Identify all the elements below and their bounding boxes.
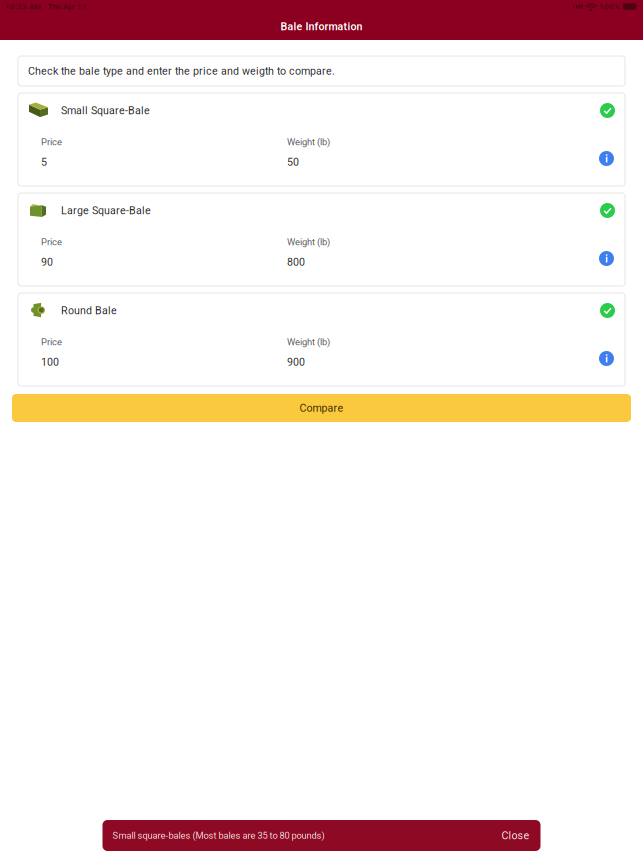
staticText: Price — [41, 336, 62, 347]
button[interactable]: Round Bale selected — [600, 303, 615, 318]
button[interactable]: About Small Square-Bale — [599, 151, 614, 166]
staticText: 900 — [287, 356, 305, 368]
staticText: Close — [501, 829, 529, 842]
staticText: Compare — [299, 402, 343, 414]
staticText: Weight (lb) — [287, 336, 330, 347]
staticText: 10:23 AM — [5, 2, 41, 11]
staticText: Price — [41, 136, 62, 147]
staticText: 800 — [287, 256, 305, 268]
staticText: Price — [41, 236, 62, 247]
button[interactable]: Large Square-Bale selected — [600, 203, 615, 218]
button[interactable]: Compare — [12, 394, 631, 422]
staticText: Thu Apr 11 — [48, 2, 87, 11]
staticText: Weight (lb) — [287, 136, 330, 147]
staticText: 5 — [41, 156, 47, 168]
staticText: Small Square-Bale — [61, 104, 150, 117]
staticText: Bale Information — [280, 20, 362, 33]
button[interactable]: Close — [491, 829, 529, 842]
staticText: Round Bale — [61, 304, 117, 317]
staticText: 100% — [599, 2, 620, 11]
button[interactable]: About Round Bale — [599, 351, 614, 366]
button[interactable]: About Large Square-Bale — [599, 251, 614, 266]
staticText: Small square-bales (Most bales are 35 to… — [112, 830, 324, 841]
staticText: 50 — [287, 156, 299, 168]
staticText: Check the bale type and enter the price … — [28, 65, 335, 77]
button[interactable]: Small Square-Bale selected — [600, 103, 615, 118]
staticText: 90 — [41, 256, 53, 268]
staticText: 100 — [41, 356, 59, 368]
staticText: Weight (lb) — [287, 236, 330, 247]
staticText: Large Square-Bale — [61, 204, 151, 217]
